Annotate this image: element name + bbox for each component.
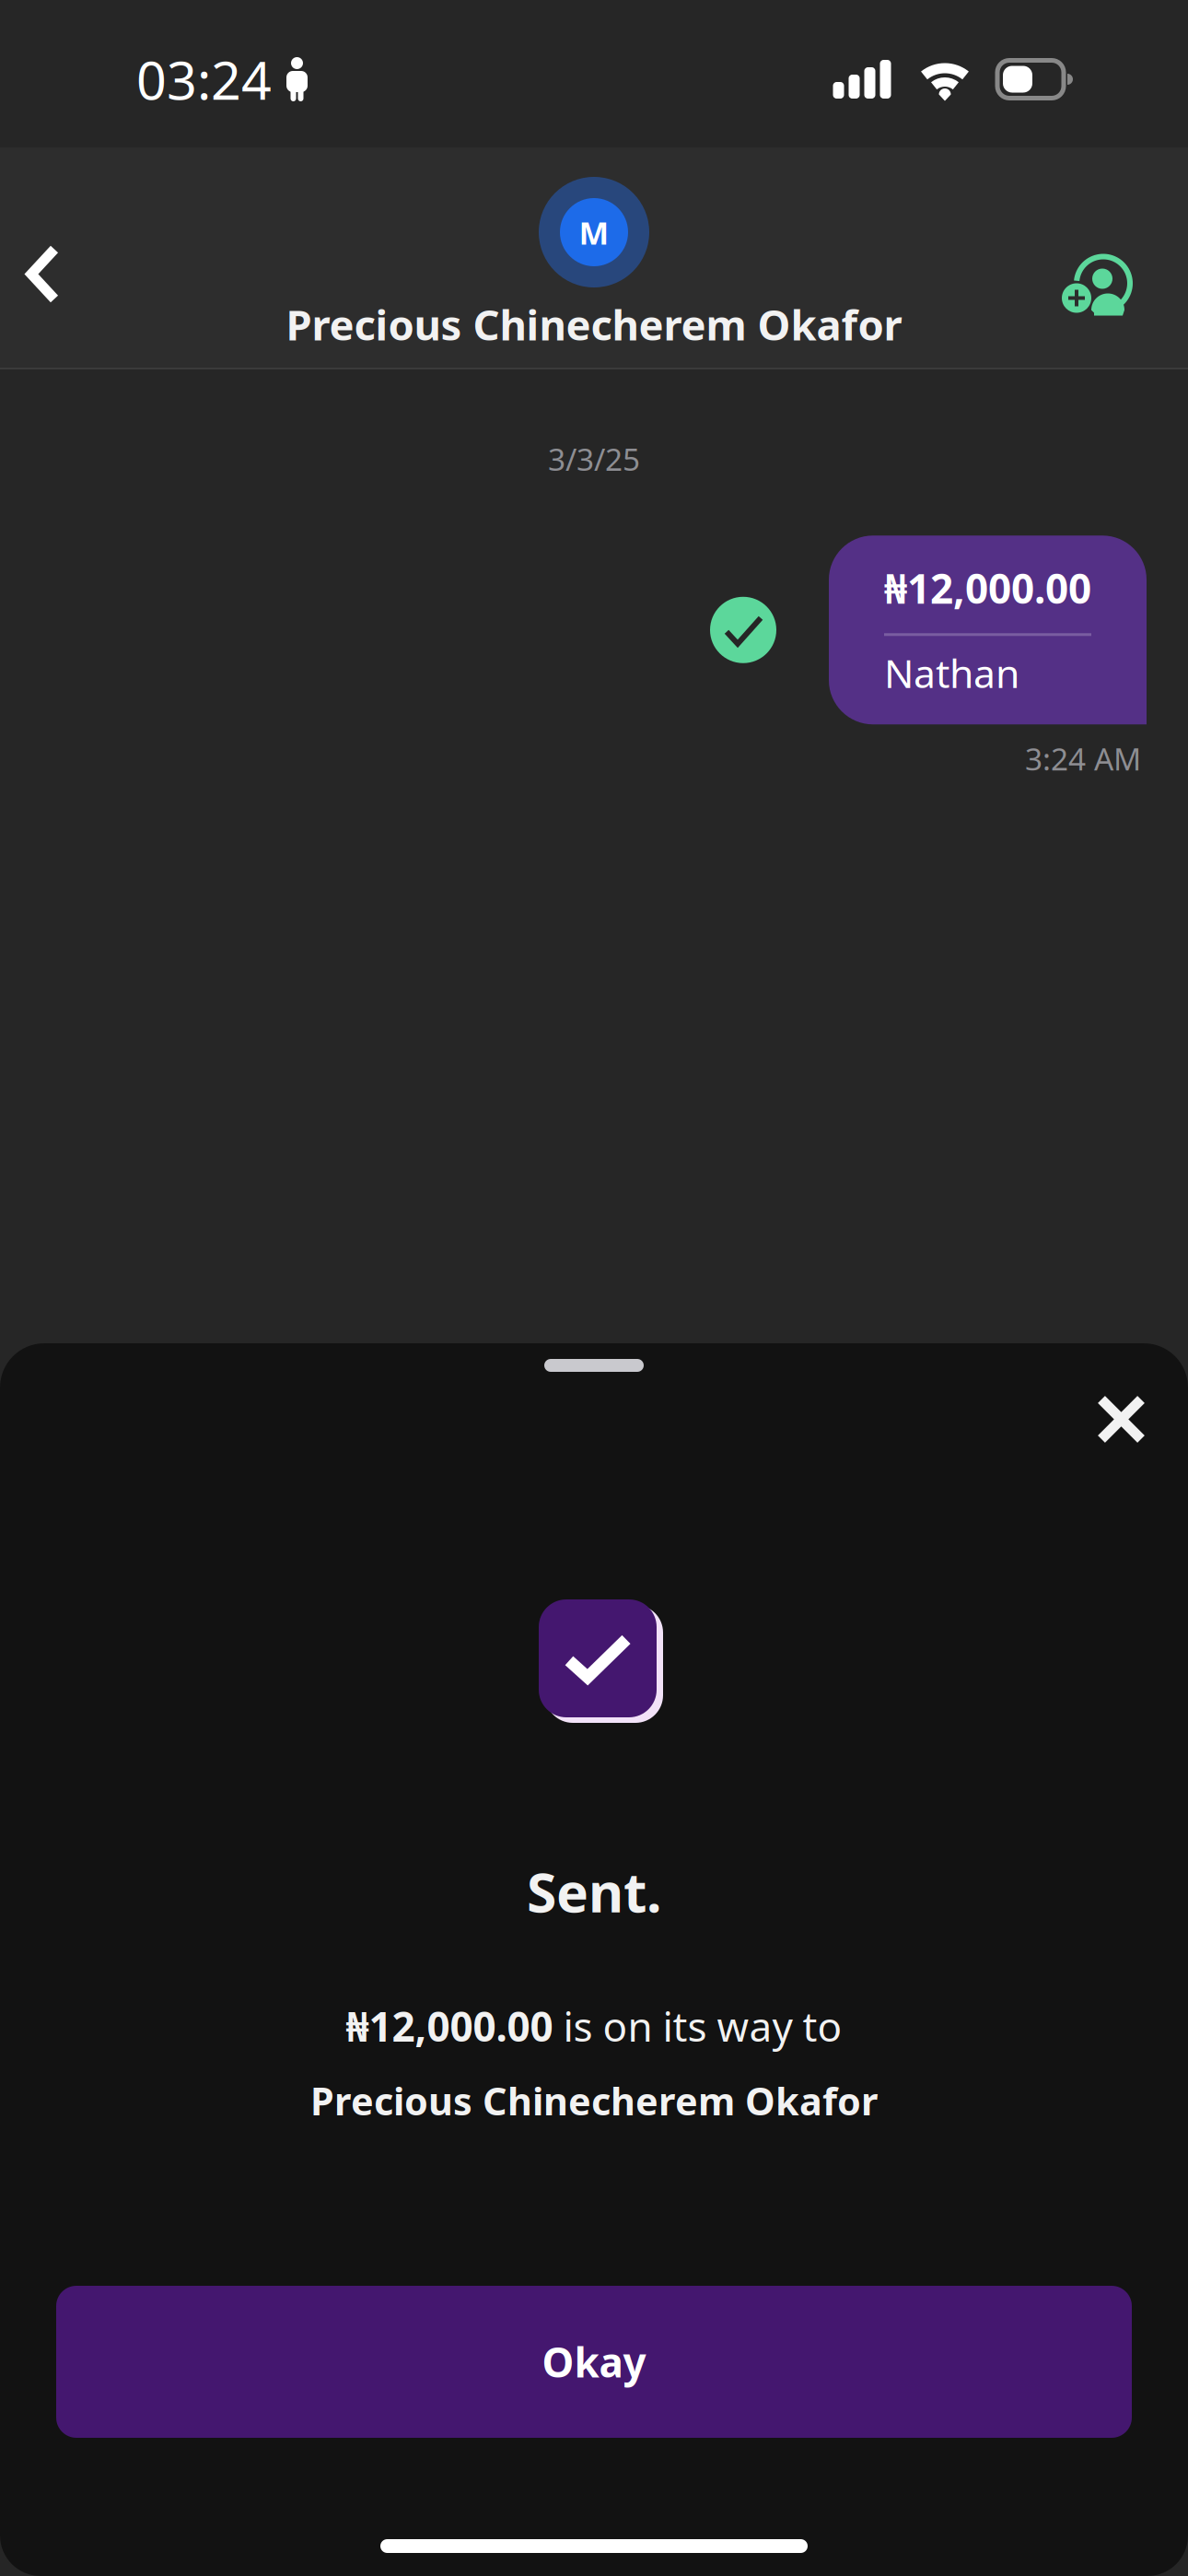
- staticText: Nathan: [884, 647, 1019, 699]
- staticText: ₦12,000.00: [884, 561, 1091, 615]
- staticText: Okay: [542, 2335, 646, 2389]
- button[interactable]: Okay: [56, 2286, 1132, 2438]
- staticText: 3/3/25: [548, 439, 640, 479]
- staticText: 03:24: [136, 44, 272, 114]
- staticText: Sent.: [527, 1856, 661, 1927]
- staticText: 3:24 AM: [1025, 738, 1141, 779]
- button[interactable]: Close: [1079, 1377, 1163, 1461]
- button[interactable]: Add contact: [1038, 230, 1188, 340]
- staticText: Precious Chinecherem Okafor: [310, 2075, 878, 2126]
- staticText: ₦12,000.00 is on its way to: [346, 1999, 842, 2053]
- button[interactable]: Back: [0, 232, 87, 339]
- staticText: Precious Chinecherem Okafor: [286, 297, 902, 352]
- staticText: M: [579, 211, 609, 253]
